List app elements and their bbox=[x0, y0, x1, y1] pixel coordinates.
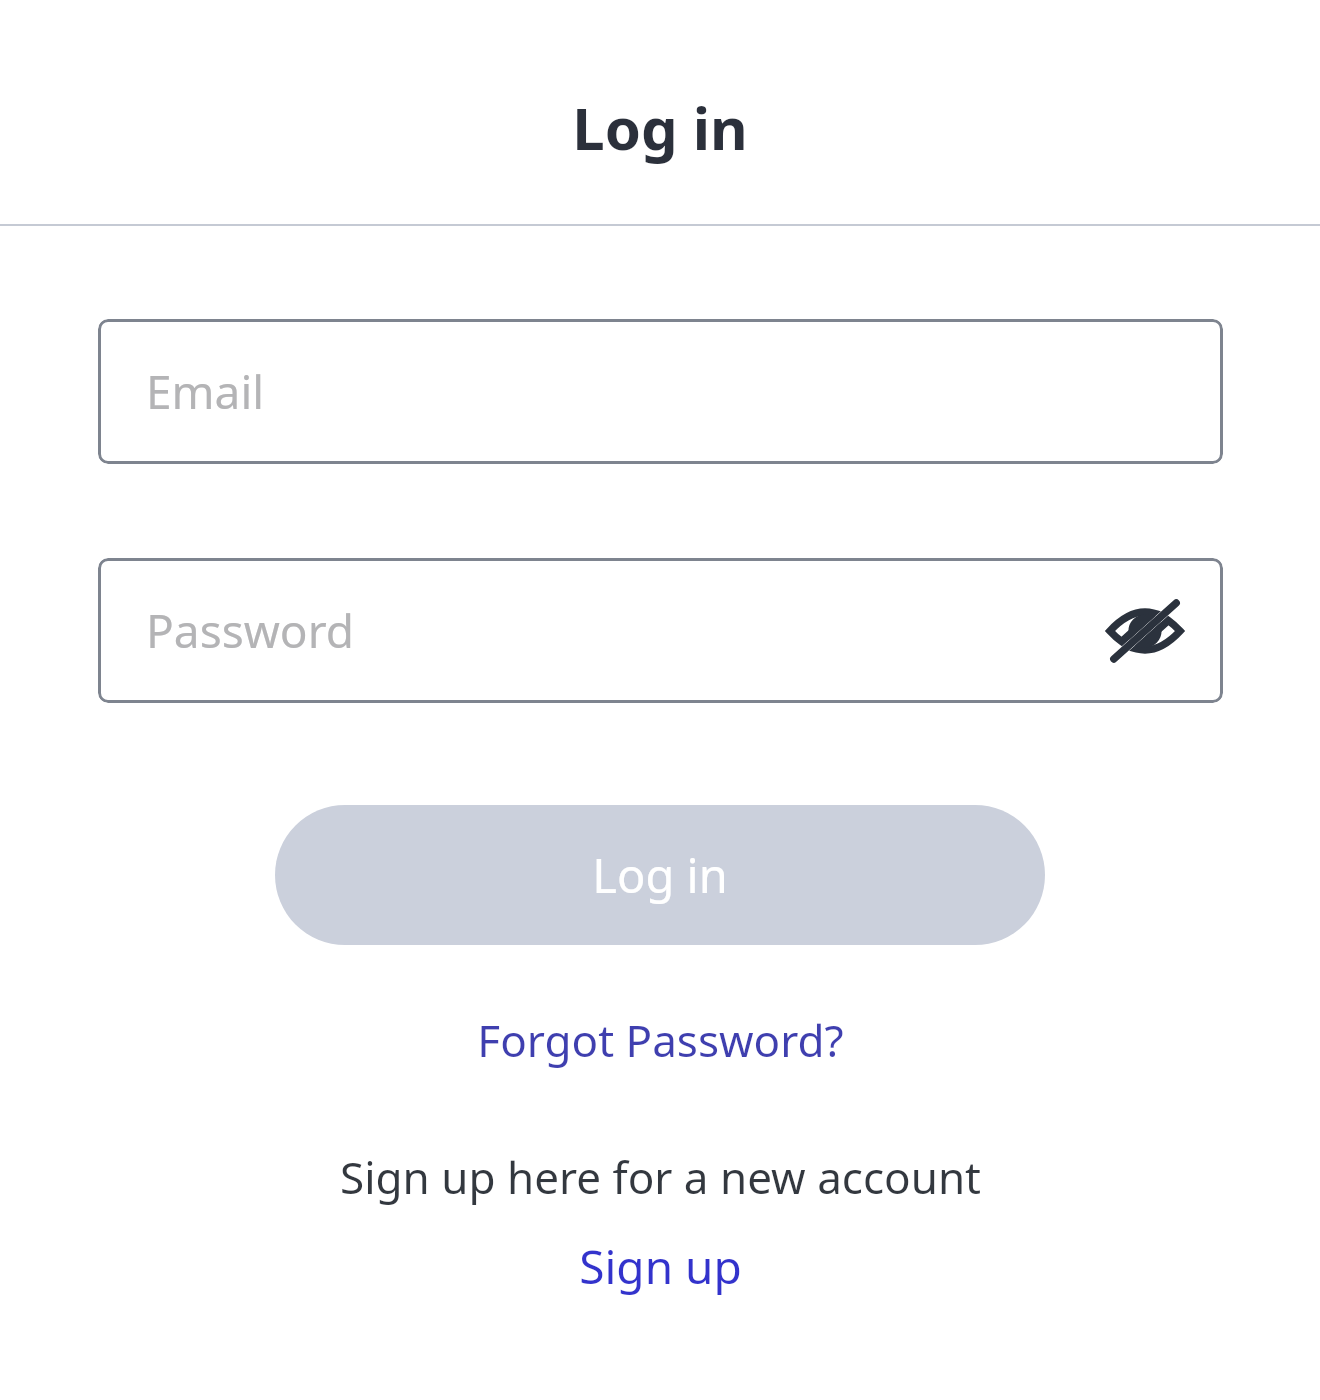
button[interactable]: Show password bbox=[1097, 583, 1193, 679]
staticText: Log in bbox=[572, 88, 748, 167]
button[interactable]: Forgot Password? bbox=[465, 1002, 856, 1078]
button[interactable]: Email bbox=[98, 319, 1223, 464]
staticText: Email bbox=[146, 360, 265, 423]
staticText: Forgot Password? bbox=[477, 1010, 844, 1070]
button[interactable]: Log in bbox=[275, 805, 1045, 945]
staticText: Password bbox=[146, 599, 355, 662]
staticText: Log in bbox=[592, 843, 728, 907]
button[interactable]: Password bbox=[98, 558, 1223, 703]
button[interactable]: Sign up bbox=[567, 1231, 754, 1302]
staticText: Sign up here for a new account bbox=[340, 1147, 981, 1207]
staticText: Sign up bbox=[579, 1235, 742, 1298]
